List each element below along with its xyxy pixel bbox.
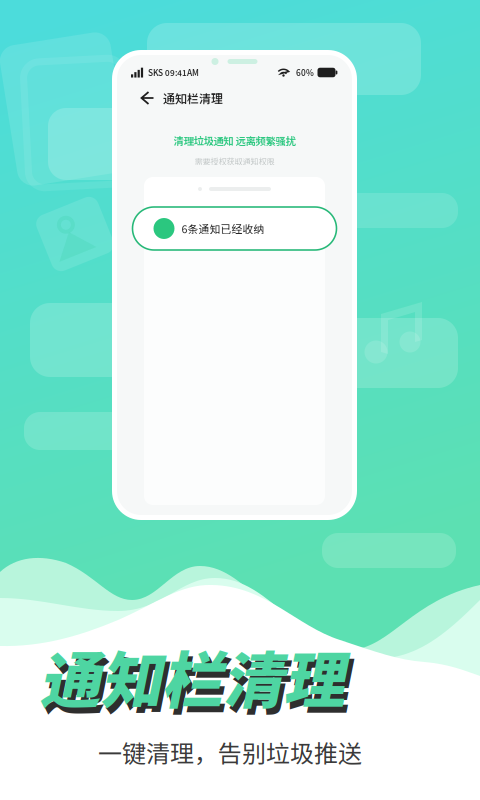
button[interactable]: 6条通知已经收纳 xyxy=(132,207,336,250)
staticText: 需要授权获取通知权限 xyxy=(194,155,274,167)
staticText: 通知栏清理 xyxy=(56,638,361,726)
staticText: 通知栏清理 xyxy=(51,632,356,720)
staticText: 60% xyxy=(296,66,314,78)
staticText: 清理垃圾通知 远离频繁骚扰 xyxy=(173,133,295,148)
staticText: 6条通知已经收纳 xyxy=(181,221,264,236)
staticText: SKS 09:41AM xyxy=(148,66,199,78)
staticText: 通知栏清理 xyxy=(163,89,223,107)
staticText: 一键清理，告别垃圾推送 xyxy=(98,735,362,769)
button[interactable]: Back xyxy=(139,85,163,111)
